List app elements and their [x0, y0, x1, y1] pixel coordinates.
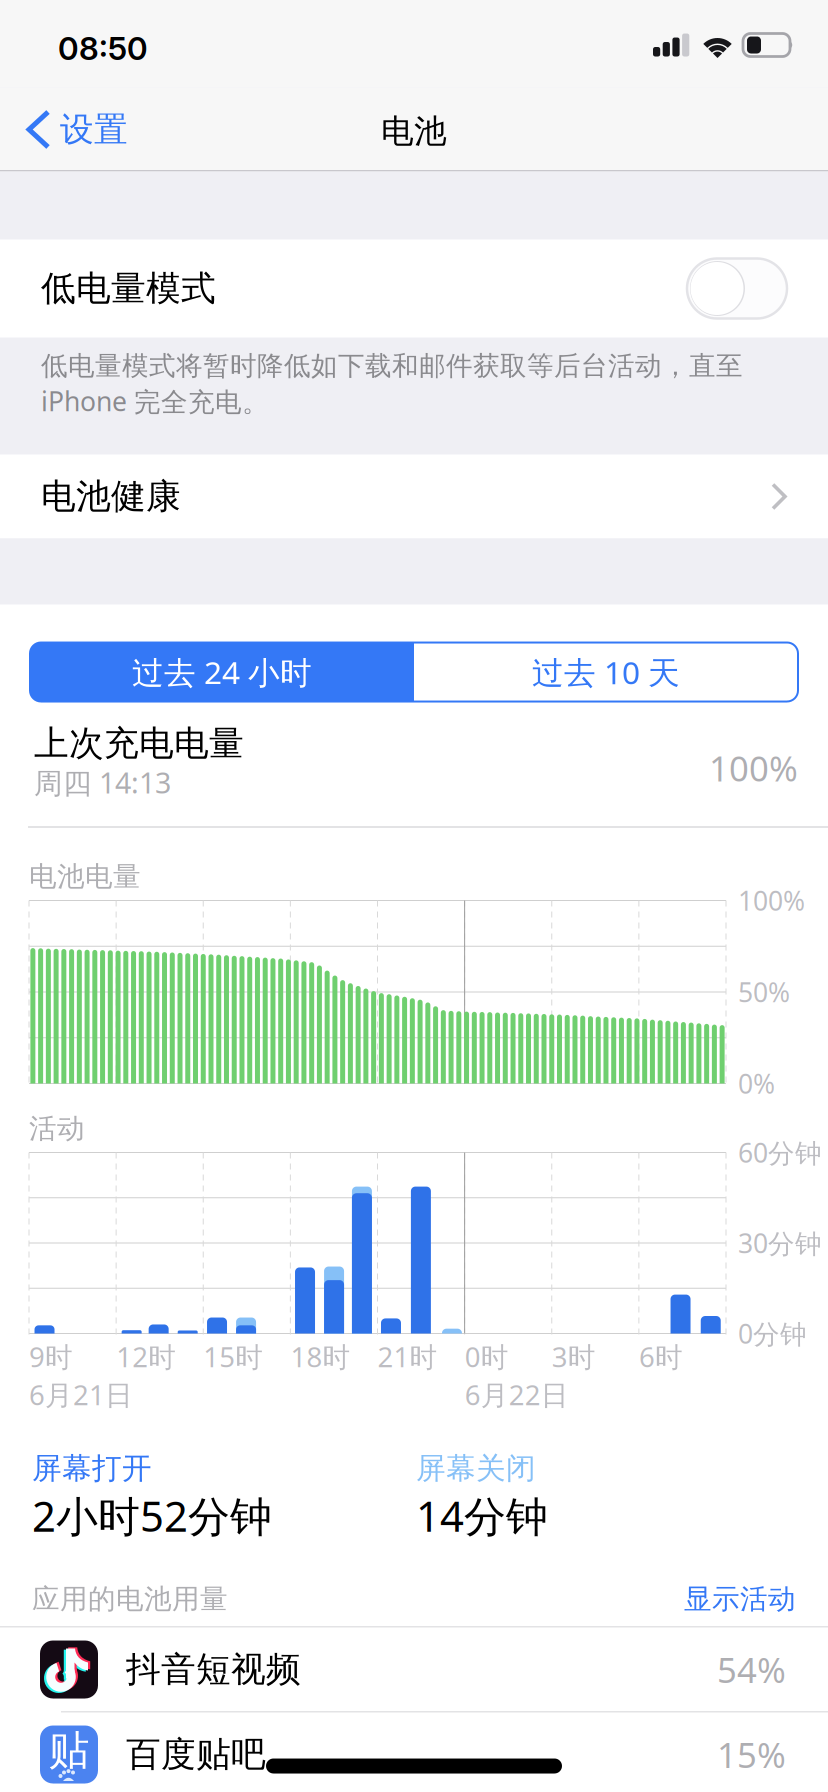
button[interactable]: 显示活动	[684, 1572, 796, 1626]
staticText: 上次充电电量	[34, 722, 244, 765]
staticText: 15%	[717, 1731, 786, 1778]
staticText: 电池电量	[29, 859, 141, 894]
staticText: iPhone 完全充电。	[41, 383, 269, 419]
staticText: 百度贴吧	[126, 1733, 266, 1776]
staticText: 过去 10 天	[532, 650, 680, 694]
staticText: 12时	[116, 1338, 176, 1375]
staticText: 3时	[552, 1338, 596, 1375]
staticText: 6月22日	[465, 1376, 569, 1413]
staticText: 活动	[29, 1111, 85, 1146]
staticText: 50%	[738, 974, 790, 1010]
staticText: 08:50	[58, 29, 148, 68]
button[interactable]: 抖音短视频	[0, 1627, 828, 1711]
button[interactable]: 设置	[0, 96, 128, 163]
staticText: 低电量模式	[41, 267, 216, 310]
staticText: 100%	[709, 744, 798, 792]
staticText: 贴	[48, 1725, 89, 1776]
button[interactable]: 过去 24 小时	[30, 642, 414, 701]
button[interactable]: 电池健康	[0, 454, 828, 538]
staticText: 电池	[381, 111, 447, 152]
staticText: 18时	[290, 1338, 350, 1375]
staticText: 过去 24 小时	[132, 650, 312, 694]
staticText: 6月21日	[29, 1376, 133, 1413]
staticText: 0分钟	[738, 1315, 807, 1351]
button[interactable]: 贴	[0, 1712, 828, 1792]
staticText: 9时	[29, 1338, 73, 1375]
staticText: 显示活动	[684, 1582, 796, 1616]
staticText: 设置	[60, 108, 128, 151]
staticText: 屏幕关闭	[416, 1450, 536, 1487]
staticText: 抖音短视频	[126, 1648, 301, 1691]
staticText: 30分钟	[738, 1225, 822, 1261]
staticText: 6时	[639, 1338, 683, 1375]
button[interactable]: 低电量模式	[0, 239, 828, 337]
staticText: 电池健康	[41, 475, 181, 518]
staticText: 15时	[203, 1338, 263, 1375]
staticText: 21时	[377, 1338, 437, 1375]
button[interactable]: 过去 10 天	[414, 642, 798, 701]
staticText: 54%	[717, 1646, 786, 1693]
staticText: 周四 14:13	[34, 763, 171, 802]
staticText: 100%	[738, 882, 805, 918]
staticText: 14分钟	[416, 1487, 548, 1544]
staticText: 2小时52分钟	[32, 1487, 272, 1544]
staticText: 0%	[738, 1065, 775, 1101]
staticText: 0时	[465, 1338, 509, 1375]
staticText: 屏幕打开	[32, 1450, 152, 1487]
staticText: 低电量模式将暂时降低如下载和邮件获取等后台活动，直至	[41, 349, 743, 383]
staticText: 60分钟	[738, 1134, 822, 1170]
staticText: 应用的电池用量	[32, 1582, 228, 1616]
